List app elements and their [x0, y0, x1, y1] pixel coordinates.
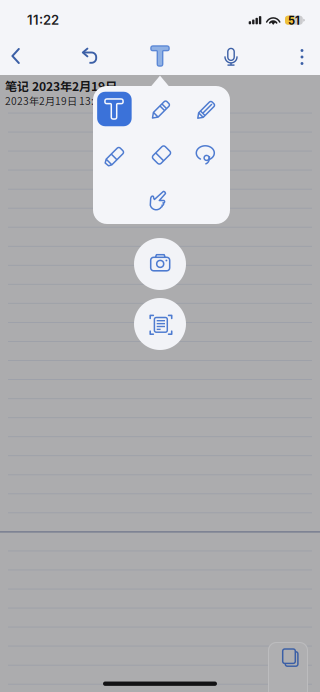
staticText: 笔记 2023年2月19日: [5, 77, 117, 94]
button[interactable]: Lasso: [190, 137, 224, 171]
staticText: 11:22: [27, 12, 59, 28]
button[interactable]: Highlighter: [99, 138, 133, 172]
button[interactable]: Eraser: [144, 138, 178, 172]
button[interactable]: Text: [97, 92, 132, 126]
button[interactable]: Hand: [143, 183, 177, 217]
button[interactable]: More options: [285, 39, 319, 75]
button[interactable]: Pages: [268, 642, 308, 692]
staticText: 2023年2月19日 13:29: [5, 93, 106, 108]
button[interactable]: Back: [0, 38, 34, 74]
button[interactable]: Pen: [144, 92, 178, 126]
button[interactable]: Pencil: [190, 92, 224, 126]
button[interactable]: Scan document: [134, 298, 186, 350]
button[interactable]: Take photo: [134, 238, 186, 290]
button[interactable]: Dictation: [211, 39, 251, 75]
staticText: 51: [288, 14, 300, 27]
button[interactable]: Undo: [69, 38, 109, 74]
button[interactable]: Text tool: [140, 38, 180, 74]
